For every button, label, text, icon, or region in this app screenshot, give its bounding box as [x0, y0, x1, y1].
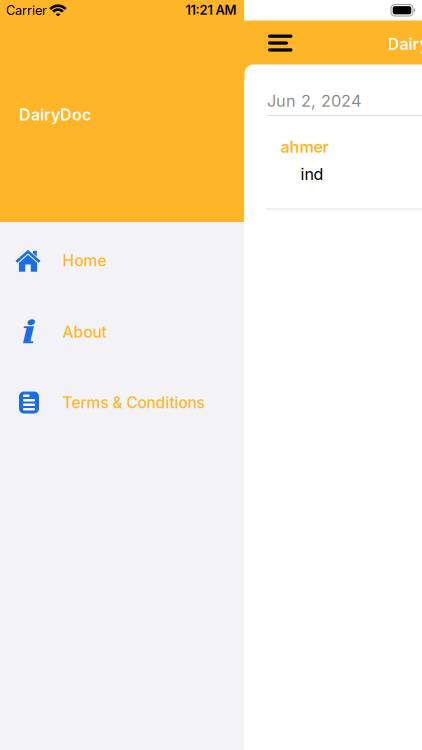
staticText: Home [62, 251, 106, 270]
staticText: DairyDoc [387, 34, 422, 54]
staticText: Terms & Conditions [62, 393, 204, 412]
button[interactable]: Menu [260, 26, 300, 60]
staticText: DairyDoc [19, 105, 91, 124]
staticText: Carrier [6, 3, 47, 18]
staticText: Jun 2, 2024 [267, 91, 362, 111]
staticText: i [23, 313, 35, 351]
button[interactable]: i [0, 304, 244, 360]
button[interactable]: ahmer [266, 116, 422, 208]
staticText: ahmer [280, 137, 328, 157]
staticText: ind [300, 164, 323, 184]
staticText: 11:21 AM [185, 2, 236, 18]
button[interactable]: Terms & Conditions [0, 374, 244, 430]
staticText: About [62, 323, 106, 341]
button[interactable]: Home [0, 232, 244, 288]
